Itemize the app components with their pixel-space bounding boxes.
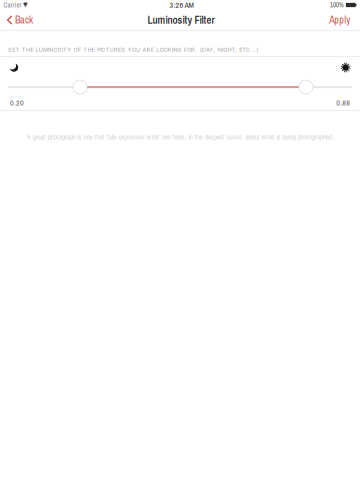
- staticText: 3:26 AM: [169, 0, 193, 10]
- staticText: 100%: [330, 1, 344, 9]
- button[interactable]: Back: [0, 10, 37, 30]
- staticText: Carrier: [3, 0, 21, 9]
- staticText: A great photograph is one that fully exp…: [26, 134, 333, 141]
- staticText: 0.20: [10, 97, 24, 108]
- staticText: Luminosity Filter: [148, 13, 215, 27]
- staticText: 0.88: [336, 97, 350, 108]
- button[interactable]: Apply: [325, 10, 360, 30]
- staticText: Apply: [329, 13, 350, 27]
- staticText: SET THE LUMINOSITY OF THE PICTURES YOU A…: [8, 46, 258, 53]
- staticText: Back: [15, 13, 33, 27]
